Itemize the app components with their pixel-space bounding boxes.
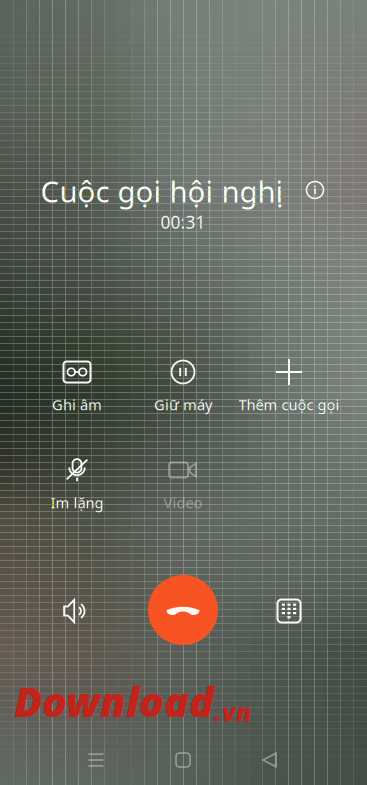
button[interactable]: Call info [302,177,328,203]
button[interactable]: Im lặng [24,452,130,514]
button[interactable]: Thêm cuộc gọi [236,354,342,416]
button[interactable]: Video [130,452,236,514]
staticText: 00:31 [160,210,205,233]
staticText: Ghi âm [52,395,102,414]
button[interactable]: Giữ máy [130,354,236,416]
staticText: Giữ máy [154,395,212,414]
staticText: .vn [214,695,252,728]
button[interactable]: Back [235,738,305,782]
button[interactable]: Home [148,738,218,782]
staticText: Video [163,493,202,512]
button[interactable]: Recent apps [61,738,131,782]
staticText: Download [14,674,214,728]
staticText: Im lặng [50,493,103,512]
button[interactable]: Keypad [257,579,321,643]
staticText: Thêm cuộc gọi [238,395,339,414]
button[interactable]: Speaker [45,579,109,643]
button[interactable]: Ghi âm [24,354,130,416]
staticText: Cuộc gọi hội nghị [40,171,283,210]
button[interactable]: End call [148,575,218,645]
